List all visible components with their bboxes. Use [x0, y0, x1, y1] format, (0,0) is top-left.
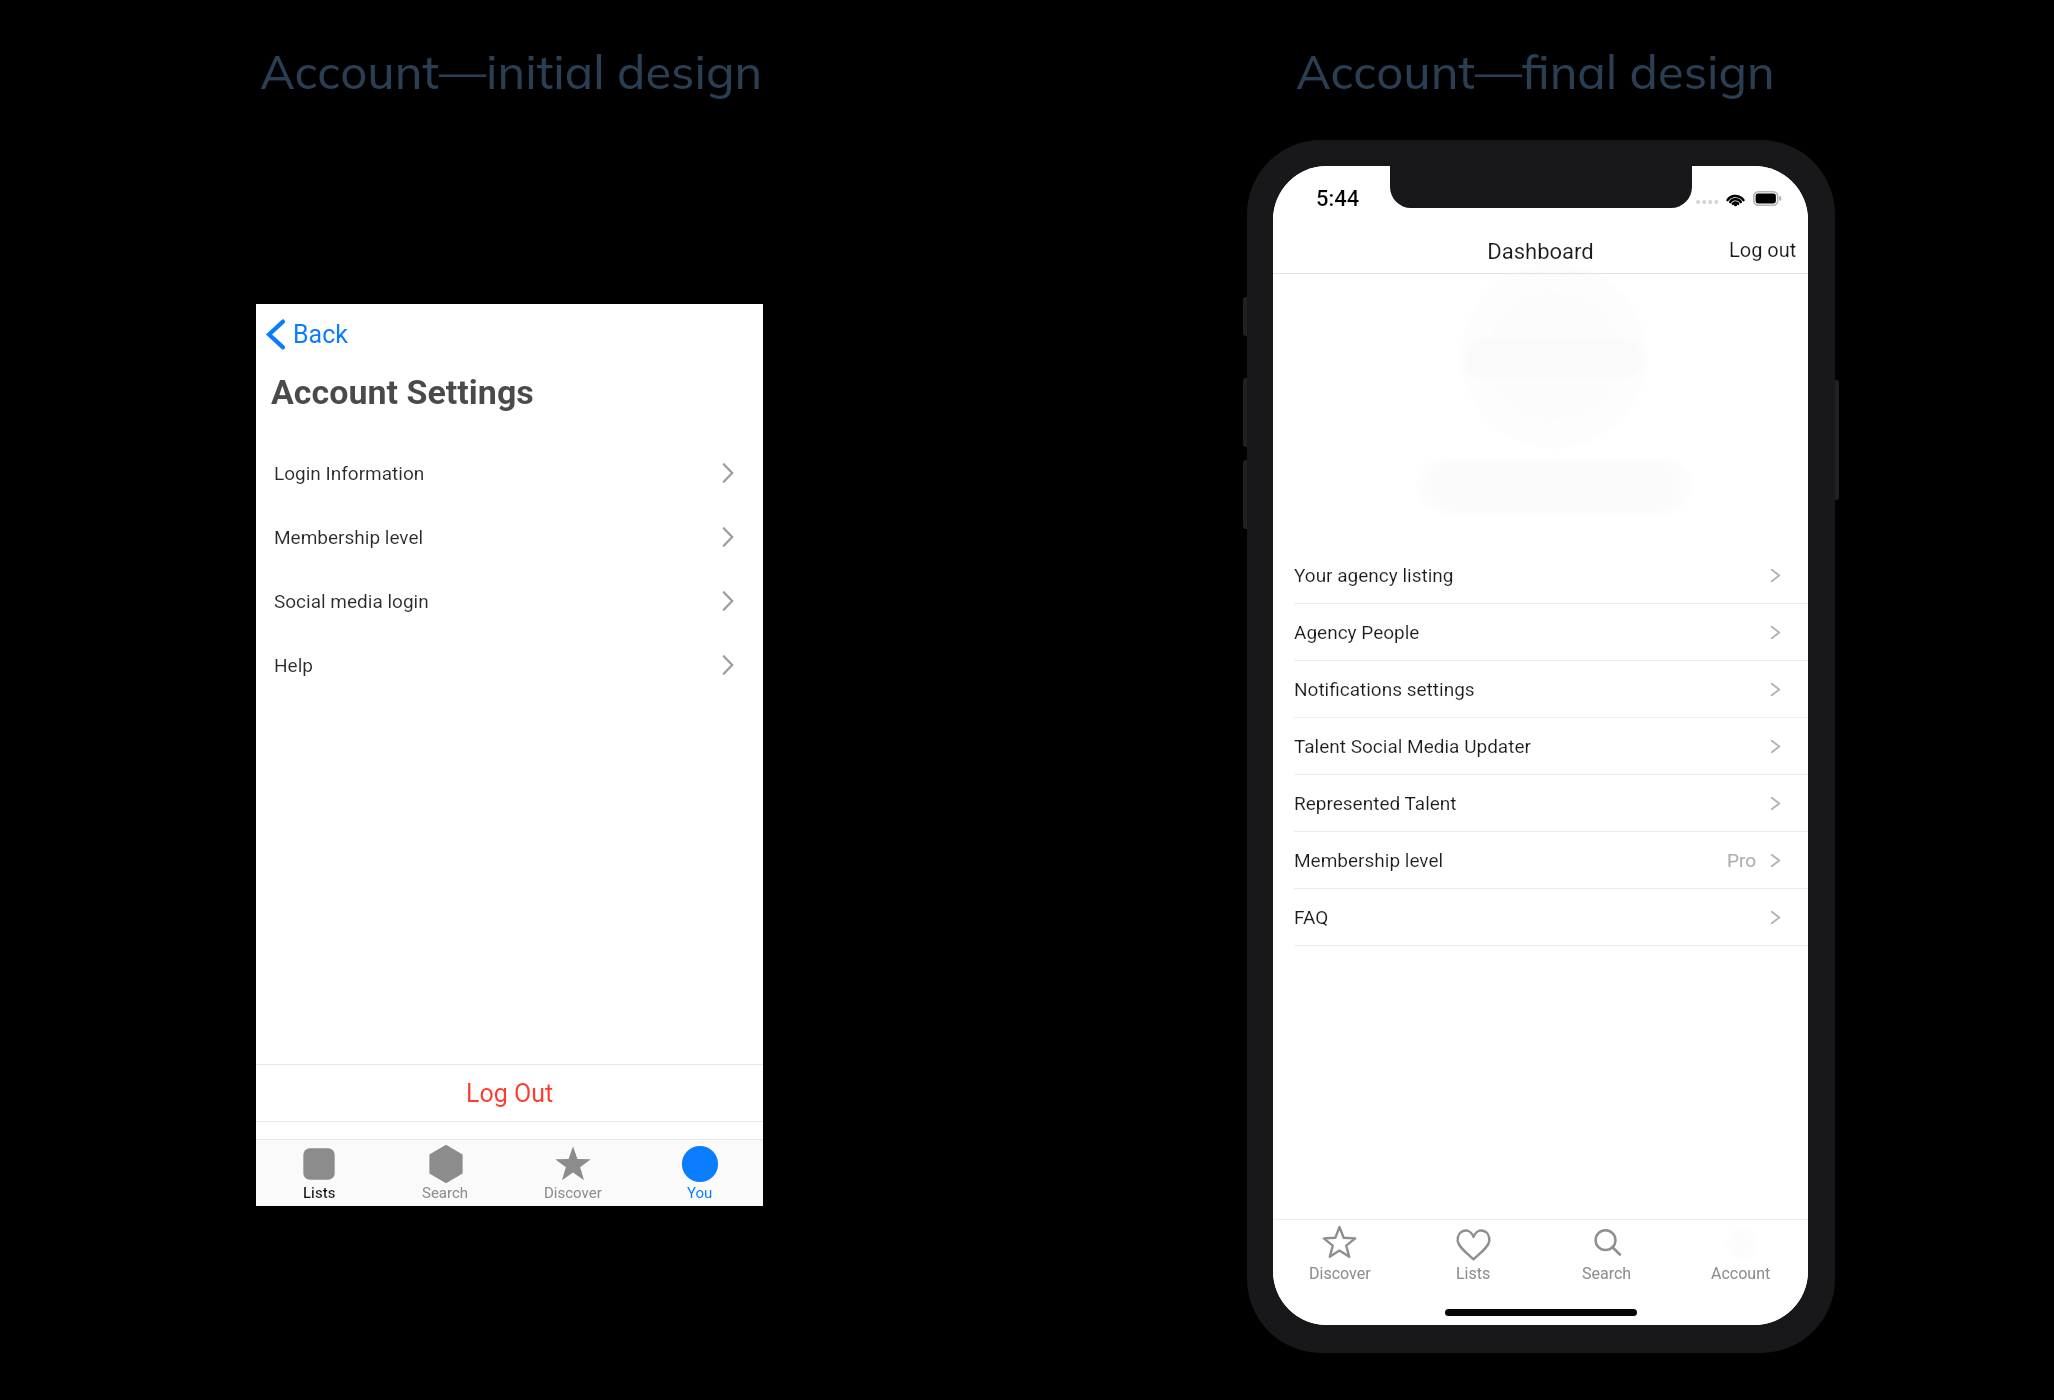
staticText: Help — [274, 654, 313, 676]
staticText: FAQ — [1294, 906, 1329, 928]
staticText: Membership level — [274, 526, 424, 548]
button[interactable]: Help — [256, 633, 763, 697]
staticText: Your agency listing — [1294, 564, 1454, 586]
staticText: Log Out — [466, 1079, 554, 1108]
button[interactable]: Log out — [1674, 230, 1797, 268]
staticText: Pro — [1727, 849, 1757, 871]
staticText: Account Settings — [271, 372, 534, 412]
button[interactable]: Social media login — [256, 569, 763, 633]
button[interactable]: FAQ — [1273, 889, 1808, 945]
other: Search — [430, 1148, 462, 1180]
staticText: Lists — [1456, 1264, 1491, 1283]
button[interactable]: Your agency listing — [1273, 547, 1808, 603]
button[interactable]: Login Information — [256, 441, 763, 505]
staticText: Represented Talent — [1294, 792, 1457, 814]
button[interactable]: Account — [1674, 1218, 1808, 1292]
button[interactable]: Back — [256, 312, 362, 356]
button[interactable]: Search — [1540, 1218, 1674, 1292]
staticText: Back — [293, 320, 348, 349]
staticText: Login Information — [274, 462, 425, 484]
button[interactable]: Membership level — [256, 505, 763, 569]
staticText: Membership level — [1294, 849, 1444, 871]
staticText: Search — [1582, 1264, 1632, 1283]
button[interactable]: Represented Talent — [1273, 775, 1808, 831]
other: Search — [1591, 1227, 1624, 1260]
other: You — [684, 1148, 716, 1180]
other: Lists — [1457, 1227, 1490, 1260]
button[interactable]: Notifications settings — [1273, 661, 1808, 717]
button[interactable]: Lists — [1406, 1218, 1540, 1292]
staticText: Log out — [1729, 238, 1797, 261]
button[interactable]: Lists — [256, 1140, 382, 1206]
button[interactable]: Talent Social Media Updater — [1273, 718, 1808, 774]
button[interactable]: Search — [382, 1140, 509, 1206]
button[interactable]: Agency People — [1273, 604, 1808, 660]
staticText: Account — [1711, 1264, 1771, 1283]
staticText: Dashboard — [1273, 239, 1808, 265]
staticText: Discover — [544, 1184, 602, 1202]
staticText: You — [687, 1184, 713, 1202]
staticText: Agency People — [1294, 621, 1420, 643]
button[interactable]: Membership level — [1273, 832, 1808, 888]
button[interactable]: Discover — [509, 1140, 636, 1206]
staticText: Social media login — [274, 590, 429, 612]
staticText: Lists — [303, 1184, 336, 1202]
button[interactable]: Discover — [1273, 1218, 1406, 1292]
staticText: 5:44 — [1316, 186, 1360, 212]
other: Lists — [303, 1148, 335, 1180]
button[interactable]: You — [636, 1140, 763, 1206]
staticText: Notifications settings — [1294, 678, 1475, 700]
other: Discover — [1323, 1227, 1356, 1260]
other: Discover — [557, 1148, 589, 1180]
staticText: Account—final design — [1296, 42, 1775, 101]
staticText: Discover — [1309, 1264, 1371, 1283]
staticText: Account—initial design — [260, 42, 763, 101]
button[interactable]: Log Out — [256, 1065, 763, 1122]
staticText: Talent Social Media Updater — [1294, 735, 1531, 757]
staticText: Search — [422, 1184, 469, 1202]
